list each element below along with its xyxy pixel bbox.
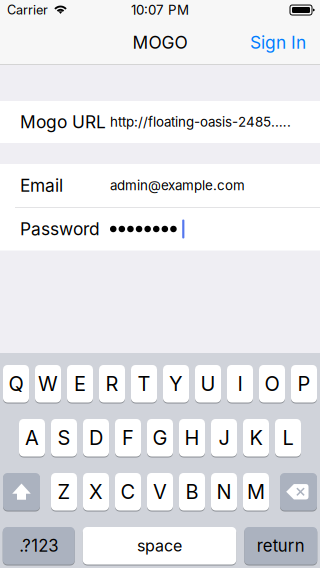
button[interactable]: Shift — [3, 472, 40, 511]
staticText: space — [137, 536, 182, 555]
staticText: Sign In — [250, 32, 306, 53]
staticText: K — [249, 426, 262, 450]
staticText: S — [57, 426, 70, 450]
button[interactable]: Sign In — [250, 20, 320, 64]
staticText: T — [137, 372, 150, 396]
button[interactable]: Y — [163, 364, 189, 403]
staticText: Y — [169, 372, 183, 396]
staticText: Password — [20, 218, 100, 239]
staticText: L — [282, 426, 293, 450]
staticText: C — [120, 480, 135, 504]
button[interactable]: P — [291, 364, 317, 403]
staticText: X — [89, 480, 103, 504]
button[interactable]: A — [19, 418, 45, 457]
staticText: U — [200, 372, 215, 396]
button[interactable]: N — [211, 472, 237, 511]
staticText: MOGO — [132, 32, 187, 53]
staticText: 10:07 PM — [131, 2, 189, 18]
button[interactable]: Delete — [280, 472, 317, 511]
button[interactable]: R — [99, 364, 125, 403]
staticText: Mogo URL — [20, 111, 106, 132]
button[interactable]: W — [35, 364, 61, 403]
button[interactable]: U — [195, 364, 221, 403]
staticText: .?123 — [19, 536, 58, 556]
button[interactable]: Z — [51, 472, 77, 511]
button[interactable]: T — [131, 364, 157, 403]
button[interactable]: X — [83, 472, 109, 511]
staticText: N — [216, 480, 231, 504]
staticText: P — [297, 372, 310, 396]
button[interactable]: Email — [0, 164, 320, 207]
button[interactable]: return — [244, 526, 317, 565]
staticText: R — [105, 372, 118, 396]
staticText: http://floating-oasis-2485.…. — [110, 114, 291, 130]
button[interactable]: G — [147, 418, 173, 457]
staticText: I — [237, 372, 242, 396]
staticText: E — [74, 372, 86, 396]
staticText: W — [38, 372, 58, 396]
staticText: return — [257, 536, 305, 556]
button[interactable]: D — [83, 418, 109, 457]
button[interactable]: E — [67, 364, 93, 403]
staticText: Email — [20, 175, 63, 196]
button[interactable]: K — [243, 418, 269, 457]
button[interactable]: C — [115, 472, 141, 511]
button[interactable]: Password — [0, 207, 320, 250]
staticText: Z — [57, 480, 70, 504]
staticText: H — [184, 426, 199, 450]
staticText: Q — [8, 372, 23, 396]
button[interactable]: Q — [3, 364, 29, 403]
button[interactable]: Mogo URL — [0, 101, 320, 143]
button[interactable]: .?123 — [3, 526, 75, 565]
button[interactable]: J — [211, 418, 237, 457]
button[interactable]: I — [227, 364, 253, 403]
staticText: G — [152, 426, 167, 450]
button[interactable]: L — [275, 418, 301, 457]
button[interactable]: space — [83, 526, 236, 565]
staticText: D — [89, 426, 103, 450]
staticText: A — [25, 426, 39, 450]
staticText: M — [247, 480, 265, 504]
button[interactable]: V — [147, 472, 173, 511]
staticText: B — [185, 480, 198, 504]
button[interactable]: B — [179, 472, 205, 511]
staticText: F — [122, 426, 134, 450]
button[interactable]: O — [259, 364, 285, 403]
staticText: admin@example.com — [110, 177, 245, 193]
button[interactable]: H — [179, 418, 205, 457]
staticText: Carrier — [7, 2, 48, 18]
button[interactable]: M — [243, 472, 269, 511]
button[interactable]: S — [51, 418, 77, 457]
staticText: J — [218, 426, 229, 450]
button[interactable]: F — [115, 418, 141, 457]
staticText: O — [264, 372, 279, 396]
staticText: V — [153, 480, 167, 504]
